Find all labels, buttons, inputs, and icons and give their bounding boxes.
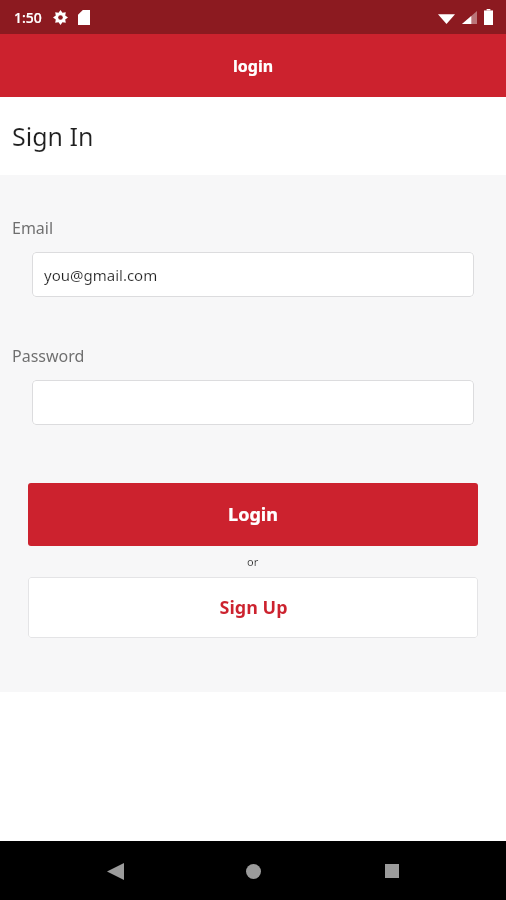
button[interactable]: Login xyxy=(28,483,478,546)
button[interactable]: Sign Up xyxy=(28,577,478,638)
button[interactable]: Back xyxy=(91,847,139,895)
button[interactable] xyxy=(32,380,474,425)
staticText: 1:50 xyxy=(14,8,42,27)
staticText: or xyxy=(247,554,259,569)
staticText: you@gmail.com xyxy=(44,265,158,285)
staticText: Email xyxy=(12,217,54,239)
staticText: login xyxy=(233,55,274,77)
button[interactable]: you@gmail.com xyxy=(32,252,474,297)
button[interactable]: Home xyxy=(229,847,277,895)
staticText: Password xyxy=(12,345,85,367)
staticText: Sign In xyxy=(12,119,94,153)
staticText: Sign Up xyxy=(219,595,288,620)
staticText: Login xyxy=(228,502,278,527)
button[interactable]: Recent apps xyxy=(368,847,416,895)
